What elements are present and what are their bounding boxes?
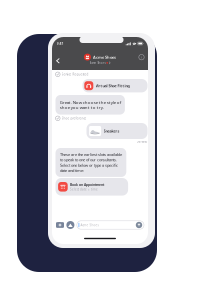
button[interactable]: Camera [56,221,64,229]
button[interactable]: Virtual Shoe Fitting [82,79,147,92]
staticText: Sneakers [103,128,119,133]
staticText: Acme Shoes [80,223,98,227]
staticText: i [141,55,142,59]
staticText: Great. Now choose the style of shoe you … [60,100,121,110]
staticText: Select date + time [70,187,98,191]
button[interactable]: Info [136,52,147,63]
staticText: Acme Shoes [89,61,105,65]
button[interactable]: Send [136,222,142,228]
staticText: 9:41 [56,41,63,46]
button[interactable]: Sneakers [86,123,147,139]
button[interactable]: Acme Shoes [52,54,148,65]
staticText: Virtual Shoe Fitting [95,83,129,88]
staticText: Delivered [136,140,147,143]
staticText: Shoe preference [61,116,86,120]
staticText: Service Requested [61,72,88,76]
button[interactable]: Apps [66,221,74,229]
button[interactable]: Book an Appointment [55,178,128,196]
staticText: Book an Appointment [70,182,104,187]
staticText: These are the earliest slots available t… [60,152,122,173]
button[interactable]: Back [49,51,67,70]
staticText: Acme Shoes [93,54,116,60]
